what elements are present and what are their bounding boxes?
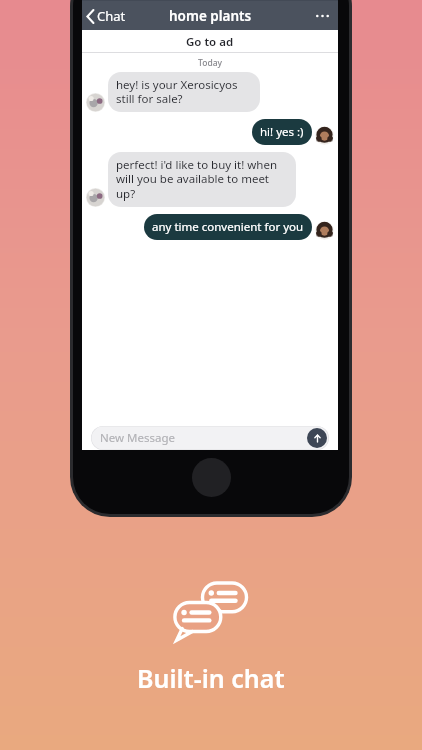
button[interactable]: any time convenient for you (100, 214, 334, 240)
staticText: home plants (169, 7, 252, 25)
button[interactable]: hey! is your Xerosicyos still for sale? (86, 72, 320, 112)
staticText: hey! is your Xerosicyos still for sale? (116, 77, 252, 107)
button[interactable]: Chat (82, 2, 134, 30)
staticText: Chat (97, 7, 126, 25)
staticText: any time convenient for you (152, 219, 304, 235)
button[interactable]: Go to ad (82, 30, 338, 53)
button[interactable]: More options (307, 5, 338, 27)
staticText: Today (198, 57, 222, 69)
staticText: New Message (100, 430, 175, 446)
staticText: Built-in chat (137, 661, 285, 695)
button[interactable]: perfect! i'd like to buy it! when will y… (86, 152, 320, 207)
staticText: Go to ad (186, 34, 234, 50)
button[interactable]: Send (307, 428, 327, 448)
staticText: hi! yes :) (260, 124, 304, 140)
button[interactable]: Home (192, 458, 231, 497)
staticText: perfect! i'd like to buy it! when will y… (116, 157, 288, 202)
button[interactable]: hi! yes :) (100, 119, 334, 145)
button[interactable]: New Message (91, 426, 329, 450)
